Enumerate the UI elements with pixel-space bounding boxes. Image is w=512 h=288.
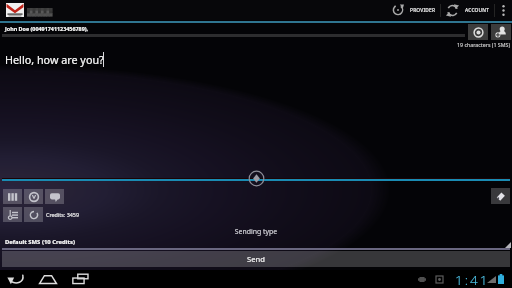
button[interactable]: Add contact — [491, 24, 511, 40]
staticText: Send — [247, 254, 265, 264]
staticText: John Doe (00491741123456789), — [5, 25, 89, 32]
button[interactable]: Statistics — [3, 189, 22, 204]
staticText: Hello, how are you? — [5, 52, 104, 67]
button[interactable]: Back — [7, 273, 24, 285]
button[interactable]: Send — [2, 251, 510, 267]
staticText: Default SMS (10 Credits) — [5, 238, 75, 246]
button[interactable]: Recent apps — [72, 273, 89, 285]
staticText: PROVIDER — [410, 7, 436, 14]
button[interactable]: Refresh credits — [24, 207, 43, 222]
button[interactable]: More options — [495, 0, 511, 20]
button[interactable]: Templates — [45, 189, 64, 204]
button[interactable]: Signature — [491, 188, 510, 204]
staticText: Sending type — [0, 227, 512, 236]
button[interactable]: Home — [39, 273, 57, 285]
staticText: 1:41 — [455, 271, 490, 288]
button[interactable]: ACCOUNT — [441, 0, 494, 20]
staticText: ACCOUNT — [465, 7, 490, 14]
button[interactable]: Options — [3, 207, 22, 222]
staticText: 19 characters (1 SMS) — [457, 41, 511, 48]
button[interactable]: Choose contact — [468, 24, 488, 40]
staticText: Credits: 3459 — [46, 211, 79, 218]
button[interactable]: PROVIDER — [387, 0, 440, 20]
button[interactable]: Schedule — [24, 189, 43, 204]
